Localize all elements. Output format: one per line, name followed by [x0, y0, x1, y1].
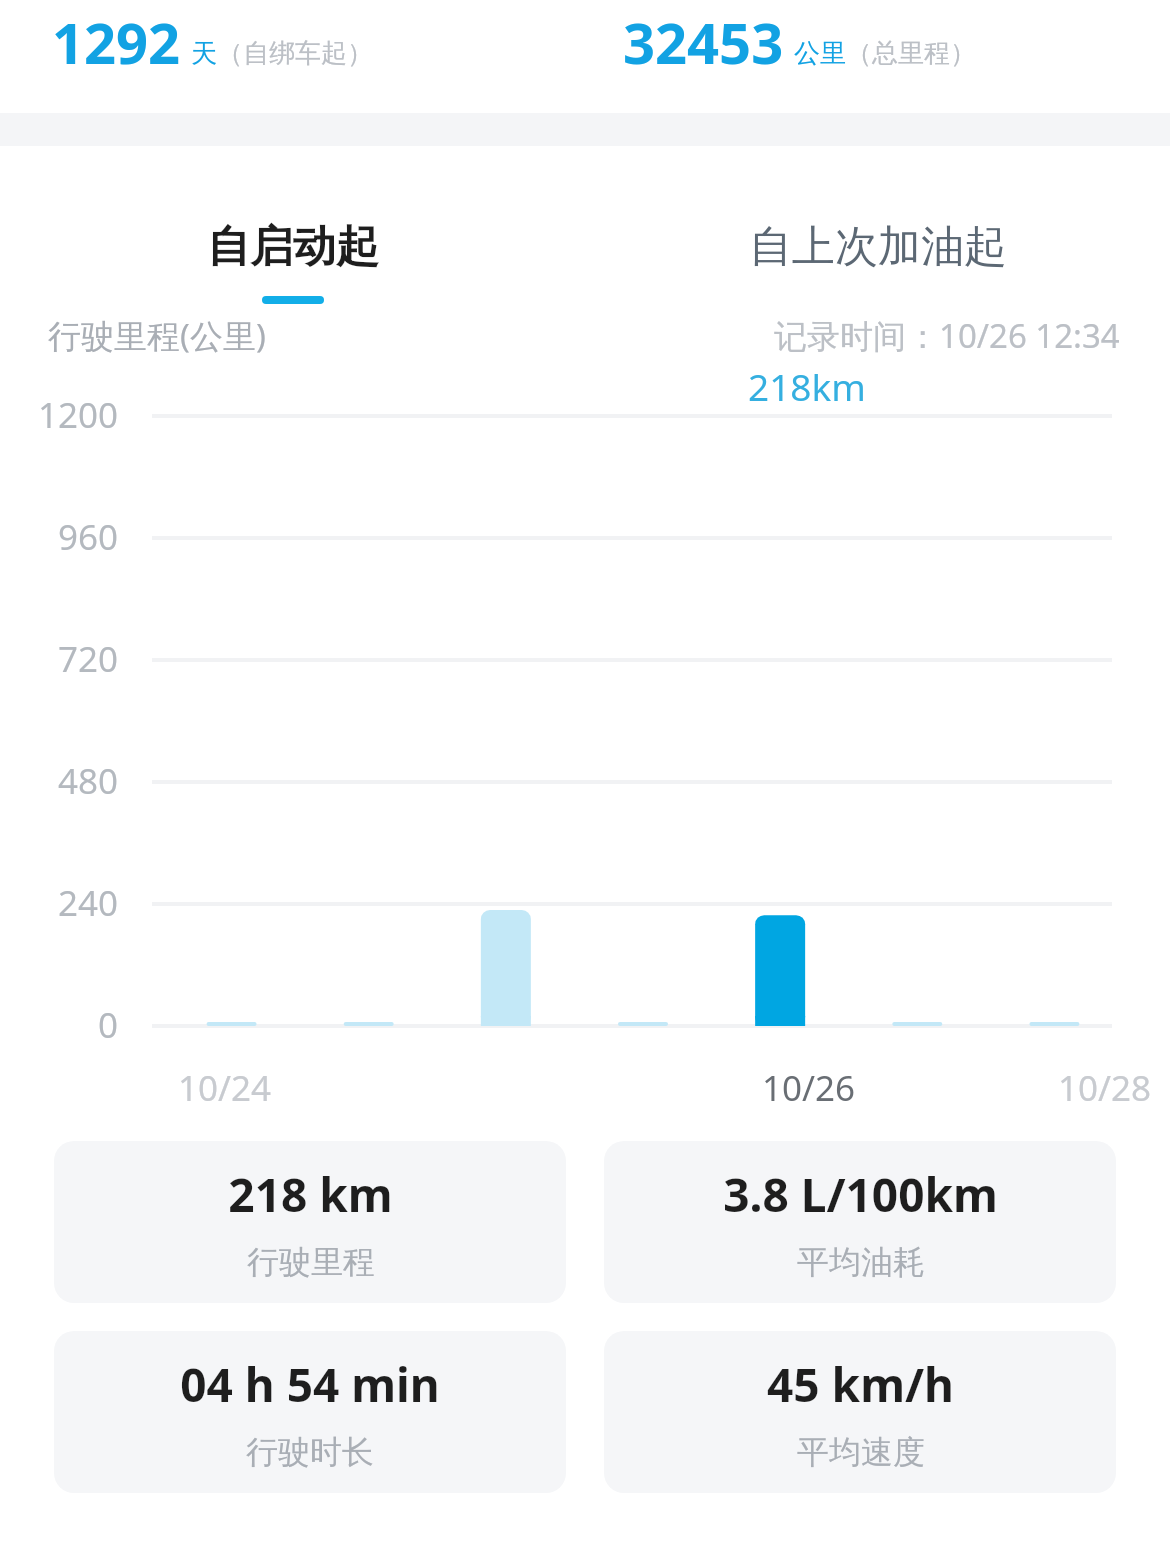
staticText: 自上次加油起: [749, 220, 1007, 274]
staticText: 1200: [0, 391, 118, 439]
staticText: 240: [0, 879, 118, 927]
button[interactable]: 32453: [585, 0, 1170, 113]
staticText: 记录时间：10/26 12:34: [774, 313, 1120, 358]
button[interactable]: 1292: [0, 0, 585, 113]
staticText: 32453: [623, 4, 784, 80]
staticText: 自启动起: [207, 220, 379, 274]
button[interactable]: 自启动起: [0, 146, 585, 304]
staticText: 平均油耗: [797, 1242, 925, 1282]
staticText: （自绑车起）: [217, 37, 373, 70]
staticText: 04 h 54 min: [180, 1353, 440, 1416]
staticText: 行驶里程: [247, 1242, 375, 1282]
staticText: 1292: [52, 4, 181, 80]
staticText: 10/26: [762, 1064, 856, 1112]
staticText: 218km: [748, 361, 866, 411]
staticText: 行驶里程(公里): [48, 313, 266, 358]
button[interactable]: 218 km: [54, 1141, 566, 1303]
staticText: 行驶时长: [246, 1432, 374, 1472]
staticText: 天: [191, 37, 217, 70]
button[interactable]: 45 km/h: [604, 1331, 1116, 1493]
staticText: 10/28: [1058, 1064, 1152, 1112]
staticText: 480: [0, 757, 118, 805]
staticText: 720: [0, 635, 118, 683]
staticText: 平均速度: [797, 1432, 925, 1472]
staticText: 45 km/h: [767, 1353, 954, 1416]
button[interactable]: 04 h 54 min: [54, 1331, 566, 1493]
staticText: 960: [0, 513, 118, 561]
button[interactable]: 自上次加油起: [585, 146, 1170, 304]
staticText: 3.8 L/100km: [723, 1163, 998, 1226]
staticText: 218 km: [228, 1163, 393, 1226]
staticText: （总里程）: [846, 37, 976, 70]
button[interactable]: 3.8 L/100km: [604, 1141, 1116, 1303]
staticText: 公里: [794, 37, 846, 70]
staticText: 10/24: [178, 1064, 272, 1112]
staticText: 0: [0, 1001, 118, 1049]
